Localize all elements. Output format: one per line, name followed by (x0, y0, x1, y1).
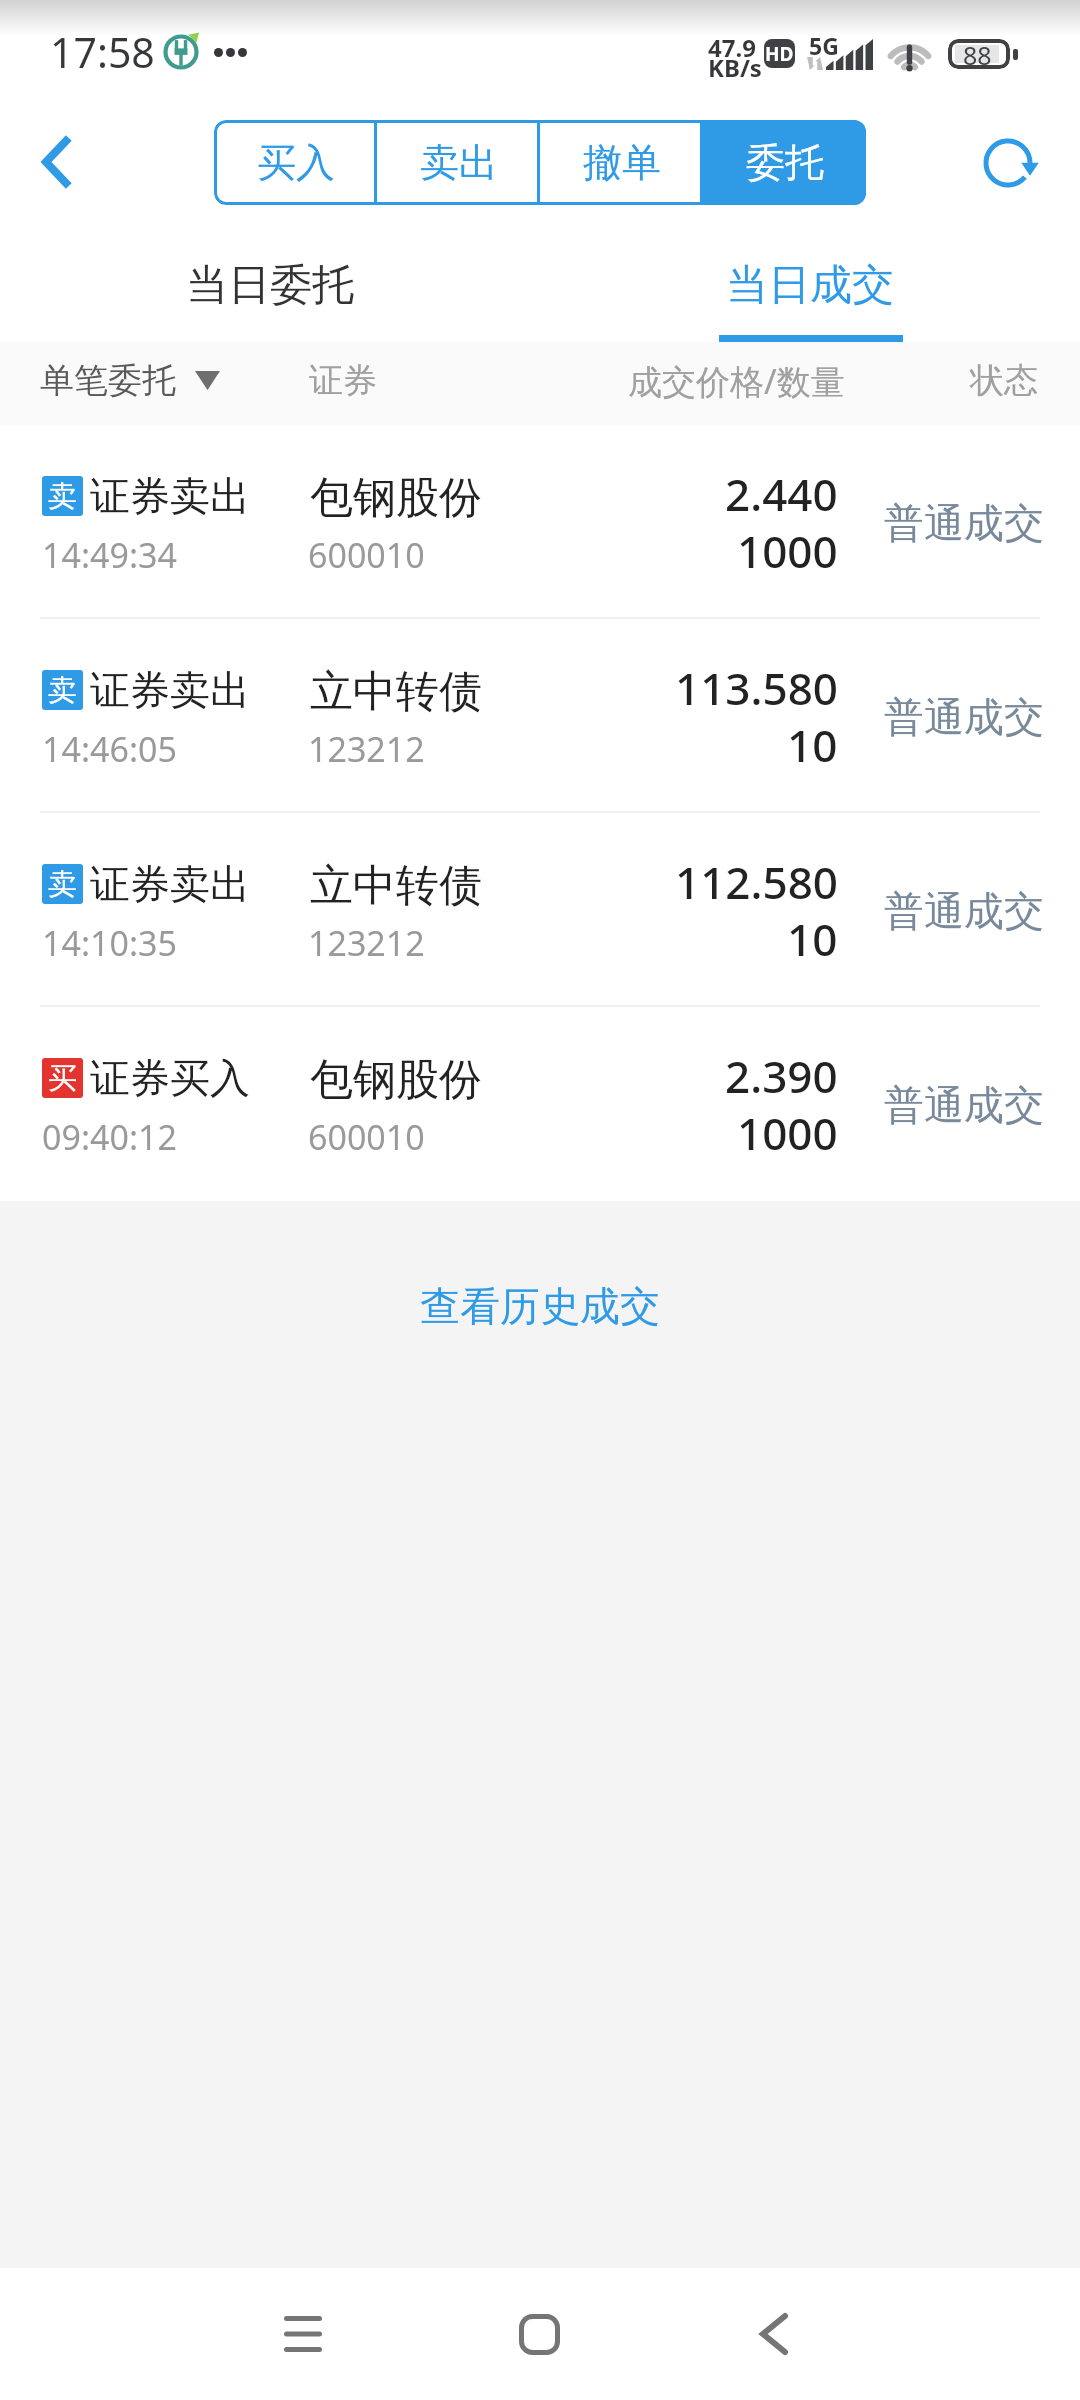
staticText: 包钢股份 (310, 471, 482, 525)
staticText: 5G (809, 30, 839, 61)
staticText: 600010 (308, 532, 425, 578)
staticText: 卖出 (420, 138, 498, 187)
staticText: 查看历史成交 (420, 1281, 660, 1331)
staticText: 17:58 (50, 24, 155, 80)
staticText: 600010 (308, 1114, 425, 1160)
button[interactable]: 卖 (0, 425, 1080, 619)
staticText: 包钢股份 (310, 1053, 482, 1107)
button[interactable]: Back (20, 126, 92, 198)
staticText: 卖 (48, 866, 77, 903)
staticText: 普通成交 (884, 498, 1044, 548)
staticText: 成交价格/数量 (628, 358, 845, 404)
button[interactable]: Recent apps (248, 2279, 358, 2389)
staticText: 113.580 (675, 658, 838, 718)
staticText: 证券卖出 (90, 471, 250, 521)
button[interactable]: 当日成交 (540, 228, 1080, 342)
staticText: 09:40:12 (42, 1114, 177, 1160)
button[interactable]: Refresh (971, 126, 1045, 200)
staticText: 14:49:34 (42, 532, 177, 578)
staticText: 证券卖出 (90, 665, 250, 715)
staticText: 47.9 (708, 31, 756, 64)
staticText: 当日委托 (186, 259, 354, 312)
staticText: 买 (48, 1060, 77, 1097)
button[interactable]: 买入 (214, 120, 377, 205)
staticText: 1000 (737, 521, 838, 581)
staticText: 撤单 (583, 138, 661, 187)
staticText: 普通成交 (884, 886, 1044, 936)
staticText: 卖 (48, 478, 77, 515)
staticText: 普通成交 (884, 1080, 1044, 1130)
staticText: KB/s (708, 51, 762, 84)
button[interactable]: 委托 (703, 120, 866, 205)
button[interactable]: 卖 (0, 619, 1080, 813)
staticText: 2.440 (725, 464, 838, 524)
staticText: 123212 (308, 726, 425, 772)
staticText: 14:46:05 (42, 726, 177, 772)
button[interactable]: 撤单 (540, 120, 703, 205)
button[interactable]: Back (719, 2279, 829, 2389)
staticText: 88 (963, 39, 992, 68)
staticText: 证券卖出 (90, 859, 250, 909)
button[interactable]: 卖出 (377, 120, 540, 205)
button[interactable]: 单笔委托 (40, 339, 220, 422)
staticText: 证券 (309, 359, 377, 402)
staticText: 单笔委托 (40, 359, 176, 402)
staticText: 14:10:35 (42, 920, 177, 966)
button[interactable]: 买 (0, 1007, 1080, 1201)
staticText: 买入 (257, 138, 335, 187)
button[interactable]: Home (484, 2279, 594, 2389)
staticText: 状态 (970, 359, 1038, 402)
staticText: 112.580 (675, 852, 838, 912)
staticText: 10 (787, 909, 838, 969)
button[interactable]: 卖 (0, 813, 1080, 1007)
staticText: 委托 (746, 138, 824, 187)
staticText: 立中转债 (310, 665, 482, 719)
staticText: 证券买入 (90, 1053, 250, 1103)
staticText: HD (765, 41, 794, 67)
staticText: 2.390 (725, 1046, 838, 1106)
staticText: 当日成交 (726, 259, 894, 312)
staticText: 立中转债 (310, 859, 482, 913)
staticText: 10 (787, 715, 838, 775)
button[interactable]: 查看历史成交 (0, 1201, 1080, 1397)
button[interactable]: 当日委托 (0, 228, 540, 342)
staticText: 普通成交 (884, 692, 1044, 742)
staticText: 1000 (737, 1103, 838, 1163)
staticText: 卖 (48, 672, 77, 709)
staticText: 123212 (308, 920, 425, 966)
